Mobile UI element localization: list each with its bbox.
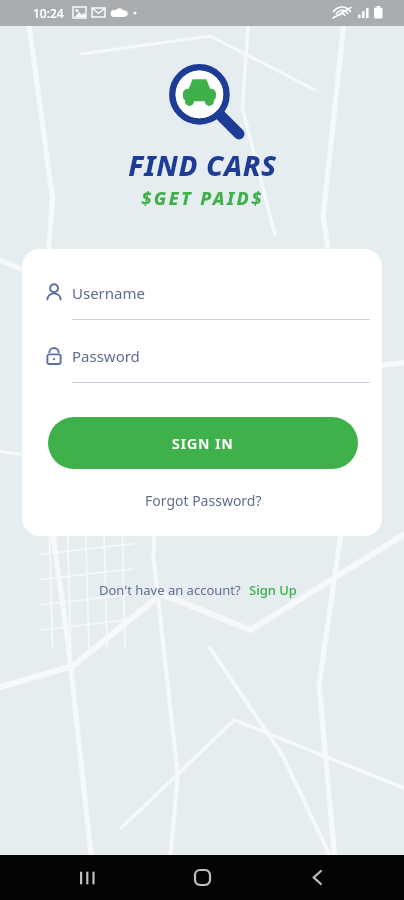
staticText: Password	[72, 346, 140, 366]
button[interactable]: Username	[36, 283, 370, 320]
button[interactable]: Recent apps	[59, 855, 115, 900]
button[interactable]: Password	[36, 346, 370, 383]
button[interactable]: Forgot Password?	[135, 487, 272, 514]
staticText: Forgot Password?	[145, 491, 262, 510]
staticText: Sign Up	[249, 581, 297, 599]
staticText: FIND CARS	[128, 146, 277, 184]
staticText: Username	[72, 283, 145, 303]
button[interactable]: Back	[289, 855, 345, 900]
button[interactable]: Sign Up	[241, 578, 305, 602]
staticText: $GET PAID$	[141, 186, 264, 211]
staticText: 10:24	[33, 5, 64, 21]
staticText: Don't have an account?	[99, 581, 241, 599]
button[interactable]: Home	[174, 855, 230, 900]
button[interactable]: SIGN IN	[48, 417, 358, 469]
staticText: SIGN IN	[172, 434, 234, 453]
